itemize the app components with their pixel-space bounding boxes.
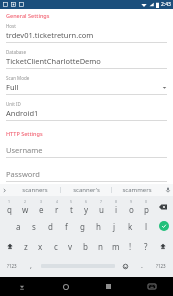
button[interactable]: Space — [39, 256, 116, 276]
button[interactable]: ? — [138, 236, 153, 256]
staticText: d — [48, 221, 53, 232]
staticText: y — [84, 204, 89, 215]
button[interactable]: g — [74, 216, 90, 236]
button[interactable]: 2 — [17, 197, 33, 216]
button[interactable]: v — [63, 236, 78, 256]
staticText: 2:43 — [161, 1, 171, 8]
button[interactable]: scammers — [112, 184, 162, 196]
button[interactable]: Username — [6, 140, 167, 164]
staticText: Username — [6, 145, 167, 155]
button[interactable]: 7 — [94, 197, 109, 216]
button[interactable]: General Settings — [6, 12, 50, 19]
staticText: u — [99, 204, 104, 215]
button[interactable]: Hide keyboard — [0, 277, 44, 296]
staticText: Android1 — [6, 108, 167, 118]
staticText: ?123 — [7, 263, 17, 269]
staticText: Full — [6, 82, 162, 92]
button[interactable]: 4 — [49, 197, 64, 216]
button[interactable]: m — [108, 236, 123, 256]
button[interactable]: a — [10, 216, 26, 236]
button[interactable]: c — [48, 236, 63, 256]
button[interactable]: 5 — [64, 197, 79, 216]
staticText: scammers — [122, 186, 152, 194]
button[interactable]: z — [19, 236, 33, 256]
button[interactable]: . — [134, 256, 150, 276]
button[interactable]: 0 — [139, 197, 154, 216]
staticText: i — [115, 204, 118, 215]
button[interactable]: Emoji — [116, 256, 134, 276]
staticText: r — [55, 204, 59, 215]
button[interactable]: h — [90, 216, 106, 236]
button[interactable]: ?123 — [150, 256, 172, 276]
button[interactable]: 3 — [33, 197, 49, 216]
button[interactable]: Switch keyboard — [130, 277, 173, 296]
button[interactable]: Scan Mode — [6, 75, 167, 101]
staticText: g — [80, 221, 85, 232]
staticText: trdev01.ticketreturn.com — [6, 30, 167, 40]
button[interactable]: scanner's — [61, 184, 111, 196]
staticText: ! — [129, 241, 132, 252]
staticText: s — [32, 221, 36, 232]
button[interactable]: Password — [6, 164, 167, 184]
staticText: Database — [6, 49, 26, 55]
button[interactable]: Home — [44, 277, 87, 296]
staticText: o — [129, 204, 134, 215]
button[interactable]: s — [26, 216, 42, 236]
button[interactable]: 9 — [124, 197, 139, 216]
staticText: j — [113, 221, 116, 232]
staticText: 2 — [24, 199, 27, 204]
button[interactable]: x — [33, 236, 48, 256]
staticText: ?123 — [156, 263, 166, 269]
staticText: . — [141, 261, 143, 271]
button[interactable]: 8 — [109, 197, 124, 216]
staticText: 9 — [130, 199, 133, 204]
other: Open dropdown — [162, 85, 167, 90]
button[interactable]: Voice input — [162, 184, 173, 196]
staticText: m — [112, 241, 120, 252]
button[interactable]: HTTP Settings — [6, 130, 43, 137]
staticText: l — [145, 221, 148, 232]
button[interactable]: 1 — [1, 197, 17, 216]
staticText: b — [83, 241, 88, 252]
button[interactable]: j — [106, 216, 122, 236]
button[interactable]: Database — [6, 49, 167, 75]
button[interactable]: 6 — [79, 197, 94, 216]
button[interactable]: Backspace — [154, 197, 172, 216]
staticText: 8 — [115, 199, 118, 204]
staticText: n — [98, 241, 103, 252]
staticText: p — [144, 204, 149, 215]
button[interactable]: ?123 — [1, 256, 23, 276]
staticText: f — [65, 221, 68, 232]
staticText: e — [39, 204, 44, 215]
staticText: scanner's — [73, 186, 100, 194]
staticText: h — [96, 221, 101, 232]
staticText: q — [7, 204, 12, 215]
button[interactable]: , — [23, 256, 39, 276]
button[interactable]: ! — [123, 236, 138, 256]
button[interactable]: k — [122, 216, 138, 236]
staticText: Password — [6, 169, 167, 179]
staticText: v — [68, 241, 73, 252]
button[interactable]: Unit ID — [6, 101, 167, 127]
button[interactable]: scanners — [9, 184, 60, 196]
button[interactable]: More suggestions — [0, 184, 9, 196]
button[interactable]: Enter — [156, 216, 172, 236]
staticText: TicketClientCharlotteDemo — [6, 56, 167, 66]
button[interactable]: l — [138, 216, 154, 236]
staticText: Unit ID — [6, 101, 21, 107]
button[interactable]: Shift — [153, 236, 172, 256]
staticText: 6 — [85, 199, 88, 204]
button[interactable]: Recent apps — [87, 277, 130, 296]
staticText: k — [128, 221, 133, 232]
button[interactable]: n — [93, 236, 108, 256]
button[interactable]: Shift — [1, 236, 19, 256]
staticText: 3 — [40, 199, 43, 204]
staticText: c — [54, 241, 58, 252]
staticText: scanners — [22, 186, 48, 194]
button[interactable]: f — [58, 216, 74, 236]
staticText: 4 — [56, 199, 59, 204]
button[interactable]: Host — [6, 23, 167, 49]
button[interactable]: b — [78, 236, 93, 256]
staticText: x — [38, 241, 43, 252]
button[interactable]: d — [42, 216, 58, 236]
